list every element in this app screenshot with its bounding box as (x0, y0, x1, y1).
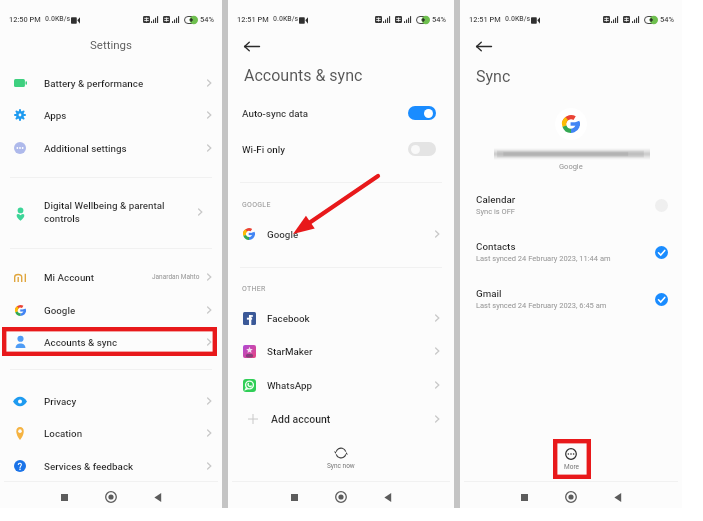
button[interactable]: Mi Account (0, 261, 222, 293)
staticText: Digital Wellbeing & parental (44, 200, 165, 211)
staticText: controls (44, 213, 80, 224)
staticText: Apps (44, 110, 67, 121)
staticText: Auto-sync data (242, 108, 309, 119)
staticText: Contacts (476, 241, 516, 252)
button[interactable]: Google (0, 294, 222, 326)
button[interactable]: Home (99, 485, 123, 509)
button[interactable]: Digital Wellbeing & parental (9, 196, 214, 228)
button[interactable]: Home (329, 485, 353, 509)
staticText: Add account (271, 413, 331, 425)
staticText: 0.0KB/s (45, 15, 71, 23)
button[interactable]: WhatsApp (228, 368, 454, 402)
staticText: Google (44, 305, 76, 316)
button[interactable]: Google (228, 217, 454, 251)
staticText: Sync is OFF (476, 207, 515, 216)
button[interactable]: Back (474, 34, 504, 58)
button[interactable]: Recents (282, 485, 306, 509)
button[interactable]: Additional settings (0, 132, 222, 164)
button[interactable]: Accounts & sync (0, 326, 222, 358)
staticText: 54% (432, 15, 447, 24)
staticText: Janardan Mahto (152, 273, 200, 281)
staticText: 12:50 PM (9, 15, 41, 24)
staticText: Sync now (327, 462, 355, 470)
staticText: Wi-Fi only (242, 144, 285, 155)
staticText: Facebook (267, 313, 310, 324)
staticText: Sync (476, 67, 511, 86)
staticText: WhatsApp (267, 380, 313, 391)
button[interactable]: Wi-Fi only (228, 131, 454, 167)
staticText: 12:51 PM (237, 15, 269, 24)
staticText: Additional settings (44, 143, 127, 154)
staticText: Google (559, 162, 583, 171)
button[interactable]: Contacts (460, 234, 682, 270)
staticText: Google (267, 229, 299, 240)
staticText: Last synced 24 February 2023, 6:45 am (476, 301, 607, 310)
staticText: Location (44, 428, 83, 439)
button[interactable]: Back (242, 34, 272, 58)
staticText: GOOGLE (242, 201, 271, 209)
staticText: Accounts & sync (244, 66, 363, 85)
button[interactable]: Sync now (228, 447, 454, 470)
staticText: 0.0KB/s (273, 15, 299, 23)
button[interactable]: Recents (512, 485, 536, 509)
staticText: More (564, 463, 579, 471)
button[interactable]: Home (559, 485, 583, 509)
button[interactable]: Back (376, 485, 400, 509)
button[interactable]: Recents (52, 485, 76, 509)
button[interactable]: Gmail (460, 281, 682, 317)
staticText: Last synced 24 February 2023, 11:44 am (476, 254, 611, 263)
button[interactable]: Auto-sync data (228, 95, 454, 131)
button[interactable]: Facebook (228, 301, 454, 335)
staticText: 12:51 PM (469, 15, 501, 24)
staticText: 54% (200, 15, 215, 24)
staticText: 0.0KB/s (505, 15, 531, 23)
staticText: Battery & performance (44, 78, 144, 89)
staticText: Mi Account (44, 272, 95, 283)
button[interactable]: Calendar (460, 187, 682, 223)
button[interactable]: Battery & performance (0, 67, 222, 99)
staticText: StarMaker (267, 346, 313, 357)
button[interactable]: Services & feedback (0, 450, 222, 482)
button[interactable]: Privacy (0, 385, 222, 417)
button[interactable]: Apps (0, 99, 222, 131)
button[interactable]: Back (146, 485, 170, 509)
button[interactable]: Location (0, 417, 222, 449)
button[interactable]: StarMaker (228, 334, 454, 368)
button[interactable]: Add account (228, 402, 454, 436)
staticText: Calendar (476, 194, 516, 205)
staticText: Services & feedback (44, 461, 134, 472)
staticText: Settings (90, 38, 132, 51)
button[interactable]: Back (606, 485, 630, 509)
staticText: OTHER (242, 285, 266, 293)
staticText: Gmail (476, 288, 502, 299)
staticText: Accounts & sync (44, 337, 118, 348)
button[interactable]: More (460, 448, 682, 471)
staticText: Privacy (44, 396, 77, 407)
staticText: 54% (660, 15, 675, 24)
